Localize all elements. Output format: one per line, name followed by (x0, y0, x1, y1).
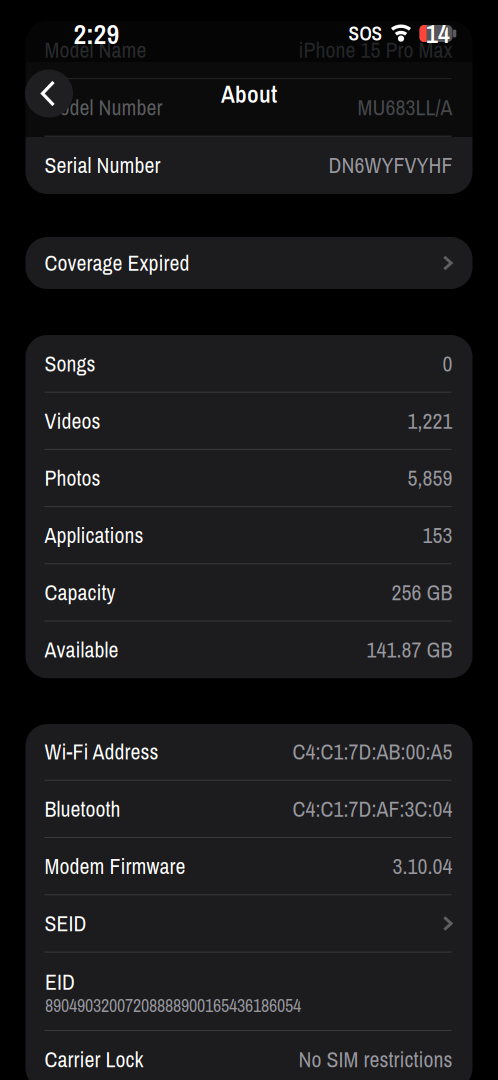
staticText: 3.10.04 (392, 852, 452, 881)
staticText: No SIM restrictions (298, 1045, 452, 1074)
staticText: 1,221 (407, 406, 452, 435)
button[interactable]: Back (25, 69, 73, 117)
staticText: Wi-Fi Address (44, 737, 158, 766)
button[interactable]: Coverage Expired (0, 0, 498, 1080)
staticText: 153 (422, 521, 452, 550)
staticText: 0 (442, 349, 452, 378)
button[interactable]: SEID (0, 0, 498, 1080)
staticText: Coverage Expired (44, 248, 189, 278)
staticText: SOS (348, 20, 382, 46)
staticText: 2:29 (73, 15, 119, 53)
staticText: 14 (426, 16, 450, 51)
staticText: Songs (44, 349, 95, 378)
staticText: iPhone 15 Pro Max (298, 35, 452, 65)
staticText: 5,859 (407, 463, 452, 493)
staticText: C4:C1:7D:AF:3C:04 (292, 794, 452, 824)
staticText: Available (44, 635, 118, 664)
staticText: Carrier Lock (44, 1045, 143, 1074)
staticText: Modem Firmware (44, 852, 185, 881)
staticText: DN6WYFVYHF (328, 151, 452, 180)
staticText: EID (45, 967, 75, 997)
staticText: SEID (44, 909, 86, 938)
staticText: Model Name (44, 35, 146, 65)
staticText: C4:C1:7D:AB:00:A5 (292, 737, 452, 766)
staticText: Photos (44, 463, 100, 493)
staticText: Videos (44, 406, 100, 435)
staticText: MU683LL/A (357, 93, 452, 122)
staticText: Bluetooth (44, 794, 120, 824)
staticText: Model Number (44, 93, 162, 122)
staticText: Serial Number (44, 151, 160, 180)
staticText: About (221, 78, 277, 110)
staticText: Capacity (44, 578, 115, 607)
staticText: 141.87 GB (366, 635, 452, 664)
staticText: 256 GB (391, 578, 452, 607)
staticText: Applications (44, 521, 143, 550)
staticText: 89049032007208888900165436186054 (45, 993, 301, 1018)
